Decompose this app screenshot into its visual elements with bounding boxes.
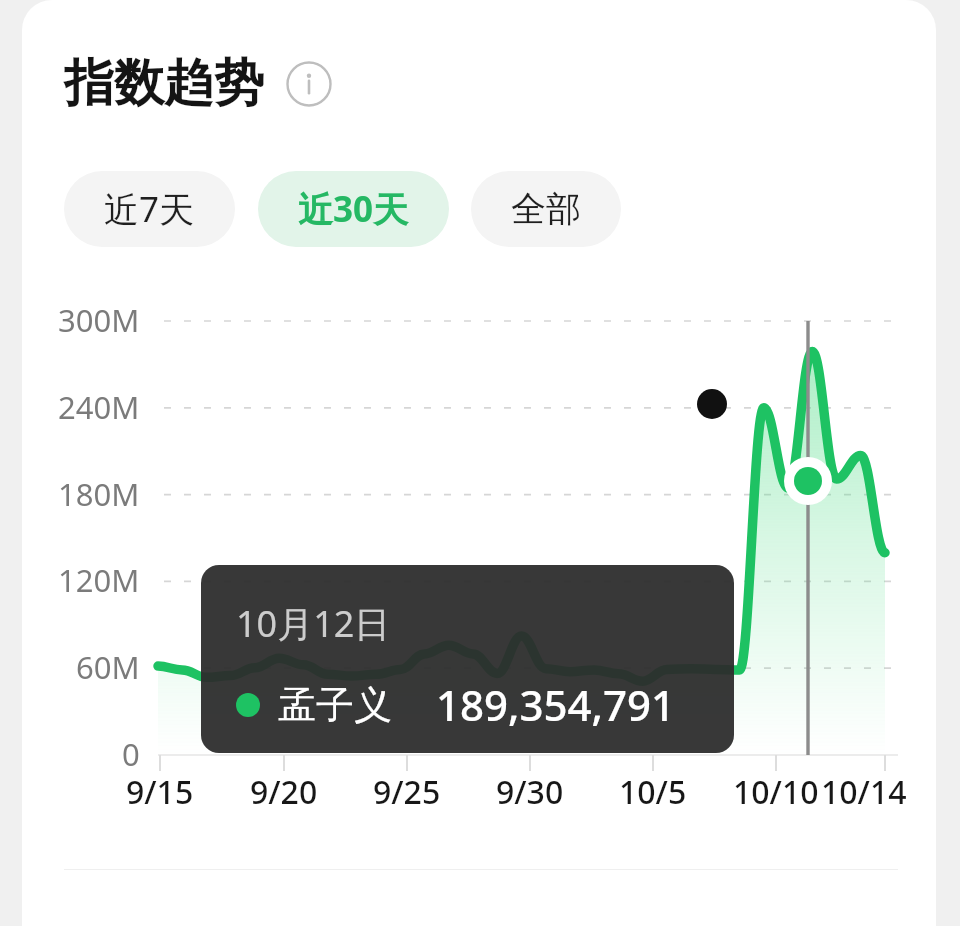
staticText: 300M <box>58 299 140 341</box>
staticText: 189,354,791 <box>436 676 676 733</box>
button[interactable]: 10月12日 <box>201 565 734 753</box>
staticText: 9/25 <box>373 770 441 814</box>
staticText: 120M <box>58 559 140 601</box>
staticText: 10/10 <box>733 770 819 814</box>
staticText: 240M <box>58 386 140 428</box>
staticText: 0 <box>122 733 140 775</box>
button[interactable]: 全部 <box>471 171 621 247</box>
staticText: 近7天 <box>104 185 195 233</box>
staticText: 9/20 <box>250 770 318 814</box>
staticText: 全部 <box>511 187 581 231</box>
staticText: 9/15 <box>126 770 194 814</box>
staticText: 孟子义 <box>278 681 392 729</box>
staticText: 60M <box>76 646 140 688</box>
staticText: 10月12日 <box>236 599 391 648</box>
button[interactable]: 近30天 <box>258 171 449 247</box>
staticText: 180M <box>58 473 140 515</box>
staticText: 10/14 <box>821 770 907 814</box>
staticText: 指数趋势 <box>64 52 264 115</box>
staticText: 近30天 <box>298 185 409 233</box>
staticText: 10/5 <box>619 770 687 814</box>
button[interactable]: 说明 <box>284 59 334 109</box>
staticText: 9/30 <box>496 770 564 814</box>
button[interactable]: 近7天 <box>64 171 235 247</box>
